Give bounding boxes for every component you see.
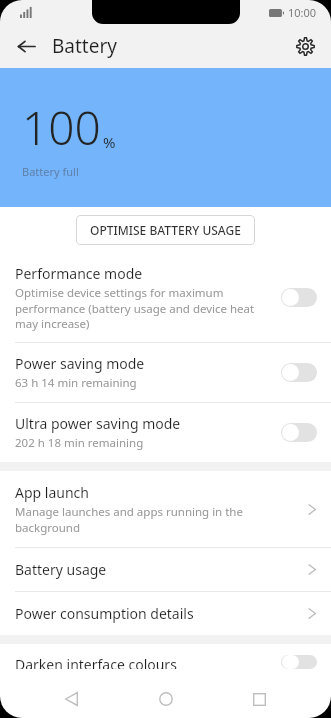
button[interactable]: Recent apps xyxy=(237,680,281,718)
staticText: Ultra power saving mode xyxy=(15,414,181,433)
button[interactable]: Toggle xyxy=(281,655,317,669)
staticText: Battery xyxy=(52,33,117,59)
button[interactable]: Power saving mode xyxy=(0,343,331,403)
staticText: Power consumption details xyxy=(15,604,194,623)
button[interactable]: Toggle xyxy=(281,423,317,442)
button[interactable]: Power consumption details xyxy=(0,592,331,635)
staticText: App launch xyxy=(15,483,89,502)
staticText: % xyxy=(103,132,116,152)
staticText: Battery usage xyxy=(15,560,107,579)
button[interactable]: Settings xyxy=(287,28,323,64)
button[interactable]: Battery usage xyxy=(0,548,331,592)
staticText: Power saving mode xyxy=(15,354,145,373)
button[interactable]: Home xyxy=(144,680,188,718)
staticText: Manage launches and apps running in the … xyxy=(15,504,243,535)
staticText: 100 xyxy=(22,96,101,159)
staticText: Darken interface colours xyxy=(15,655,177,669)
button[interactable]: Performance mode xyxy=(0,253,331,343)
button[interactable]: App launch xyxy=(0,471,331,548)
staticText: 63 h 14 min remaining xyxy=(15,375,137,391)
staticText: OPTIMISE BATTERY USAGE xyxy=(90,222,241,238)
staticText: 202 h 18 min remaining xyxy=(15,435,144,451)
staticText: Battery full xyxy=(22,164,79,179)
button[interactable]: OPTIMISE BATTERY USAGE xyxy=(76,215,255,245)
button[interactable]: Back xyxy=(50,680,94,718)
button[interactable]: Toggle xyxy=(281,288,317,307)
button[interactable]: Darken interface colours xyxy=(0,644,331,680)
staticText: Optimise device settings for maximum per… xyxy=(15,285,255,331)
button[interactable]: Ultra power saving mode xyxy=(0,403,331,462)
button[interactable]: Back xyxy=(8,28,44,64)
staticText: 10:00 xyxy=(288,5,317,20)
staticText: Performance mode xyxy=(15,264,143,283)
button[interactable]: Toggle xyxy=(281,363,317,382)
